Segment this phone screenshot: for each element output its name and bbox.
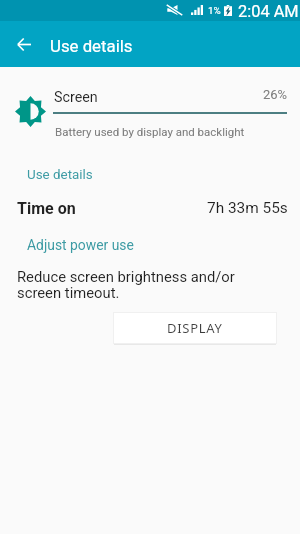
staticText: 26% (263, 87, 288, 102)
staticText: 2:04 AM (238, 2, 299, 21)
staticText: Adjust power use (27, 237, 134, 253)
staticText: 1% (208, 5, 221, 16)
staticText: Use details (27, 167, 93, 183)
staticText: Screen (54, 89, 98, 106)
staticText: 7h 33m 55s (207, 199, 288, 217)
button[interactable]: Back (1, 21, 47, 67)
staticText: Reduce screen brightness and/or screen t… (17, 268, 235, 301)
button[interactable]: Use details (17, 163, 103, 187)
button[interactable]: DISPLAY (113, 312, 277, 344)
button[interactable]: Adjust power use (17, 233, 144, 257)
staticText: Battery used by display and backlight (55, 125, 245, 138)
staticText: DISPLAY (167, 319, 223, 337)
staticText: Time on (17, 199, 76, 218)
staticText: Use details (50, 36, 133, 56)
